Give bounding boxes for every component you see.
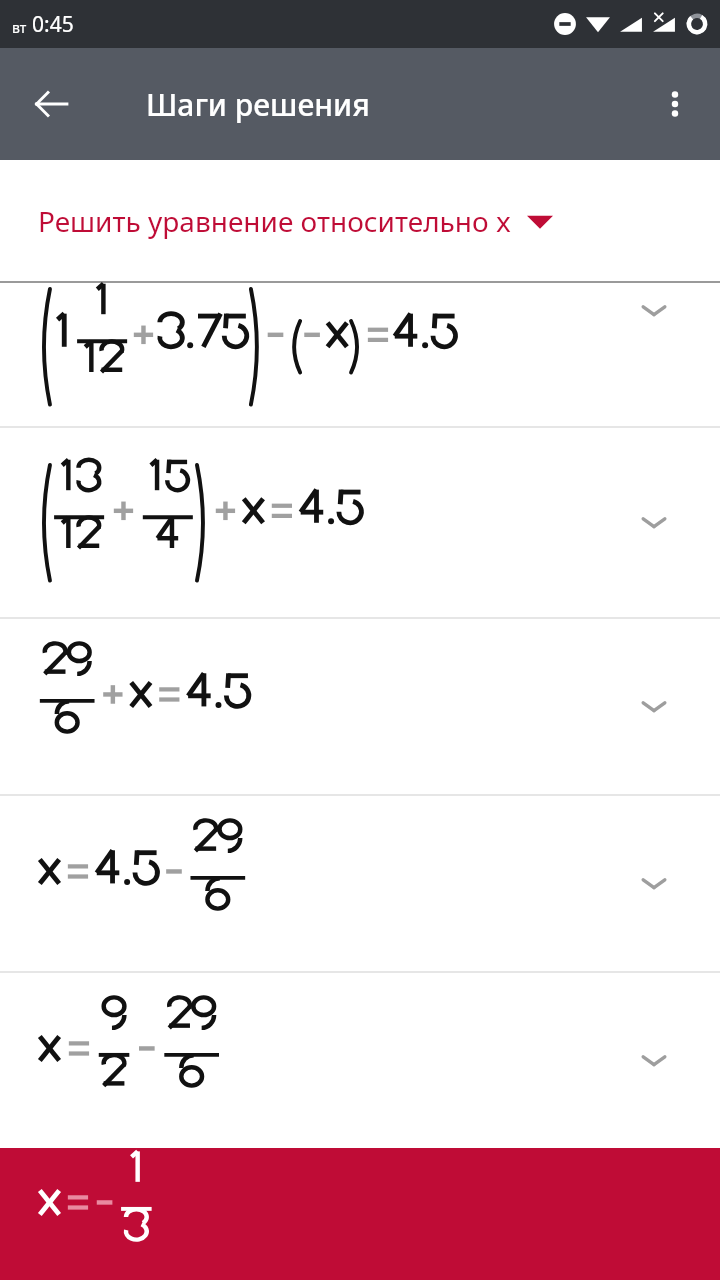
button[interactable]: Развернуть шаг xyxy=(628,285,680,337)
button[interactable]: Развернуть шаг xyxy=(0,428,720,617)
staticText: вт xyxy=(12,18,27,37)
button[interactable]: Развернуть шаг xyxy=(628,681,680,733)
staticText: Решить уравнение относительно x xyxy=(38,202,511,240)
button[interactable]: Развернуть шаг xyxy=(628,858,680,910)
button[interactable]: Развернуть шаг xyxy=(0,796,720,971)
button[interactable]: Развернуть шаг xyxy=(0,283,720,426)
staticText: Шаги решения xyxy=(146,84,370,125)
button[interactable] xyxy=(0,1148,720,1280)
button[interactable]: Решить уравнение относительно x xyxy=(0,160,720,281)
button[interactable]: Ещё xyxy=(644,73,706,135)
button[interactable]: Развернуть шаг xyxy=(0,973,720,1148)
button[interactable]: Развернуть шаг xyxy=(628,1035,680,1087)
button[interactable]: Развернуть шаг xyxy=(0,619,720,794)
staticText: 0:45 xyxy=(32,10,74,39)
button[interactable]: Назад xyxy=(18,71,84,137)
button[interactable]: Развернуть шаг xyxy=(628,497,680,549)
